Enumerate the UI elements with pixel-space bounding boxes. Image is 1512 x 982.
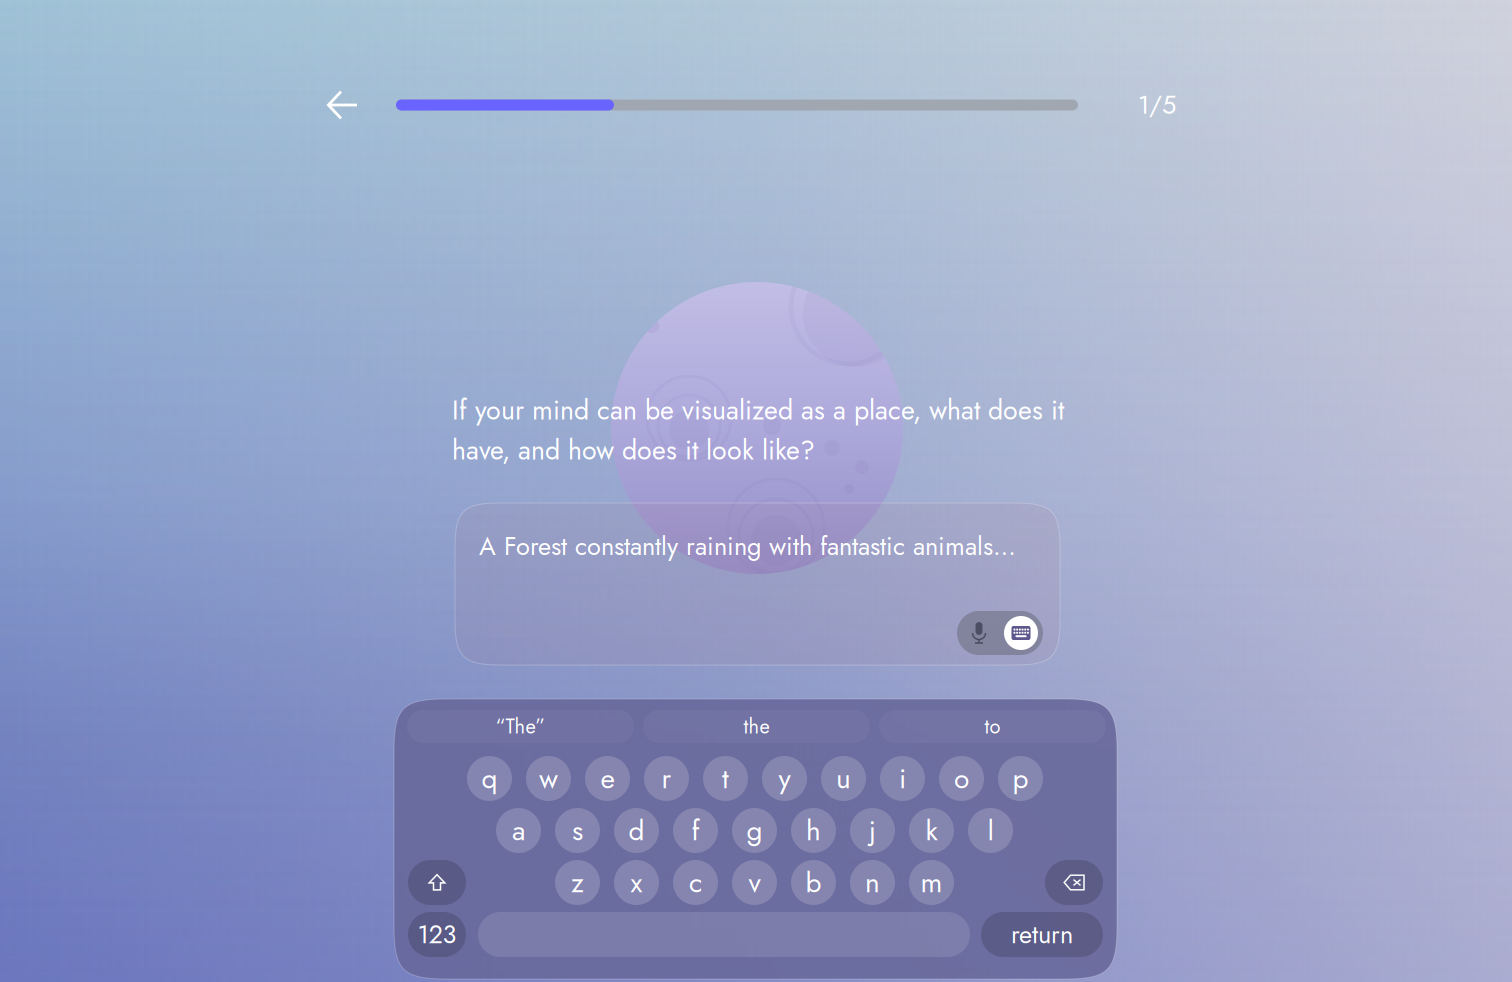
button[interactable]: c xyxy=(673,860,718,905)
button[interactable]: the xyxy=(643,710,870,743)
button[interactable]: i xyxy=(880,756,925,801)
button[interactable]: k xyxy=(909,808,954,853)
staticText: i xyxy=(899,758,906,799)
button[interactable]: q xyxy=(467,756,512,801)
staticText: to xyxy=(984,712,1000,741)
staticText: q xyxy=(481,758,497,799)
staticText: u xyxy=(836,758,851,799)
button[interactable]: b xyxy=(791,860,836,905)
button[interactable]: t xyxy=(703,756,748,801)
button[interactable]: u xyxy=(821,756,866,801)
staticText: a xyxy=(512,810,525,851)
staticText: A Forest constantly raining with fantast… xyxy=(479,528,1016,565)
staticText: c xyxy=(689,862,702,903)
button[interactable]: Delete xyxy=(1045,860,1103,905)
button[interactable]: Shift xyxy=(408,860,466,905)
button[interactable]: “The” xyxy=(407,710,634,743)
button[interactable]: e xyxy=(585,756,630,801)
button[interactable]: Switch between dictation and keyboard xyxy=(957,611,1043,655)
button[interactable]: r xyxy=(644,756,689,801)
staticText: n xyxy=(865,862,880,903)
button[interactable]: n xyxy=(850,860,895,905)
staticText: r xyxy=(661,758,671,799)
staticText: b xyxy=(805,862,821,903)
staticText: o xyxy=(954,758,969,799)
staticText: x xyxy=(630,862,642,903)
button[interactable]: p xyxy=(998,756,1043,801)
staticText: e xyxy=(600,758,614,799)
staticText: h xyxy=(806,810,821,851)
button[interactable]: h xyxy=(791,808,836,853)
button[interactable]: w xyxy=(526,756,571,801)
staticText: t xyxy=(722,758,729,799)
button[interactable]: l xyxy=(968,808,1013,853)
button[interactable]: v xyxy=(732,860,777,905)
staticText: f xyxy=(691,810,699,851)
staticText: d xyxy=(628,810,644,851)
staticText: 123 xyxy=(417,916,456,953)
button[interactable]: d xyxy=(614,808,659,853)
button[interactable]: j xyxy=(850,808,895,853)
button[interactable]: y xyxy=(762,756,807,801)
button[interactable]: to xyxy=(879,710,1106,743)
staticText: 1/5 xyxy=(1138,87,1176,123)
staticText: g xyxy=(746,810,762,851)
button[interactable]: o xyxy=(939,756,984,801)
staticText: m xyxy=(920,862,942,903)
staticText: z xyxy=(571,862,584,903)
staticText: v xyxy=(748,862,760,903)
staticText: have, and how does it look like? xyxy=(452,431,815,469)
staticText: the xyxy=(743,712,769,741)
staticText: w xyxy=(539,758,558,799)
button[interactable]: Numbers and symbols xyxy=(408,912,466,957)
staticText: p xyxy=(1012,758,1028,799)
staticText: If your mind can be visualized as a plac… xyxy=(452,391,1064,429)
staticText: return xyxy=(1011,916,1073,953)
button[interactable]: m xyxy=(909,860,954,905)
staticText: s xyxy=(572,810,583,851)
staticText: k xyxy=(925,810,937,851)
staticText: l xyxy=(987,810,993,851)
button[interactable]: a xyxy=(496,808,541,853)
button[interactable]: x xyxy=(614,860,659,905)
staticText: “The” xyxy=(495,712,545,741)
button[interactable]: s xyxy=(555,808,600,853)
staticText: y xyxy=(778,758,790,799)
button[interactable]: z xyxy=(555,860,600,905)
button[interactable]: Back xyxy=(327,90,358,120)
button[interactable]: f xyxy=(673,808,718,853)
staticText: j xyxy=(869,810,876,851)
button[interactable]: Return xyxy=(981,912,1103,957)
button[interactable]: g xyxy=(732,808,777,853)
